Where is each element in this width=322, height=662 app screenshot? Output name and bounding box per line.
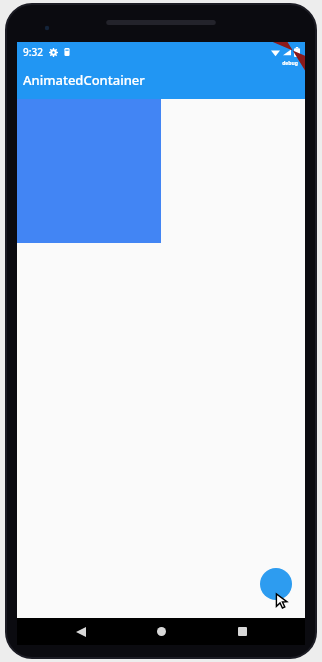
staticText: debug <box>282 60 298 67</box>
button[interactable]: AnimatedContainer <box>17 61 305 99</box>
button[interactable]: Animate <box>260 568 292 600</box>
button[interactable]: Back <box>64 618 98 645</box>
staticText: AnimatedContainer <box>23 71 145 89</box>
button[interactable]: Recent apps <box>225 618 259 645</box>
staticText: 9:32 <box>23 45 43 59</box>
button[interactable]: Home <box>144 618 178 645</box>
